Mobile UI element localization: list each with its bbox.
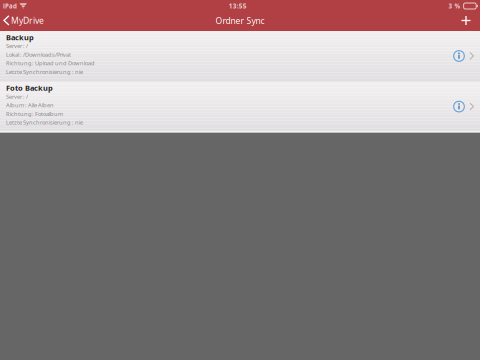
staticText: Richtung: Upload und Download	[6, 59, 95, 67]
staticText: Letzte Synchronisierung : nie	[6, 118, 83, 126]
button[interactable]: Backup	[0, 31, 480, 81]
button[interactable]: MyDrive	[0, 14, 44, 29]
staticText: Letzte Synchronisierung : nie	[6, 68, 83, 76]
staticText: 3 %	[448, 2, 460, 10]
staticText: Server : /	[6, 42, 28, 50]
staticText: Server : /	[6, 93, 28, 100]
staticText: Ordner Sync	[215, 15, 264, 26]
staticText: Lokal : /Downloads/Privat	[6, 51, 71, 58]
staticText: iPad	[3, 2, 17, 10]
staticText: Backup	[6, 32, 34, 42]
staticText: Foto Backup	[6, 83, 53, 93]
staticText: 13:55	[229, 2, 247, 10]
staticText: Album : Alle Alben	[6, 101, 54, 109]
staticText: Richtung: Fotoalbum	[6, 110, 63, 118]
staticText: MyDrive	[11, 15, 44, 26]
button[interactable]: Foto Backup	[0, 82, 480, 132]
button[interactable]: Add	[461, 14, 480, 28]
